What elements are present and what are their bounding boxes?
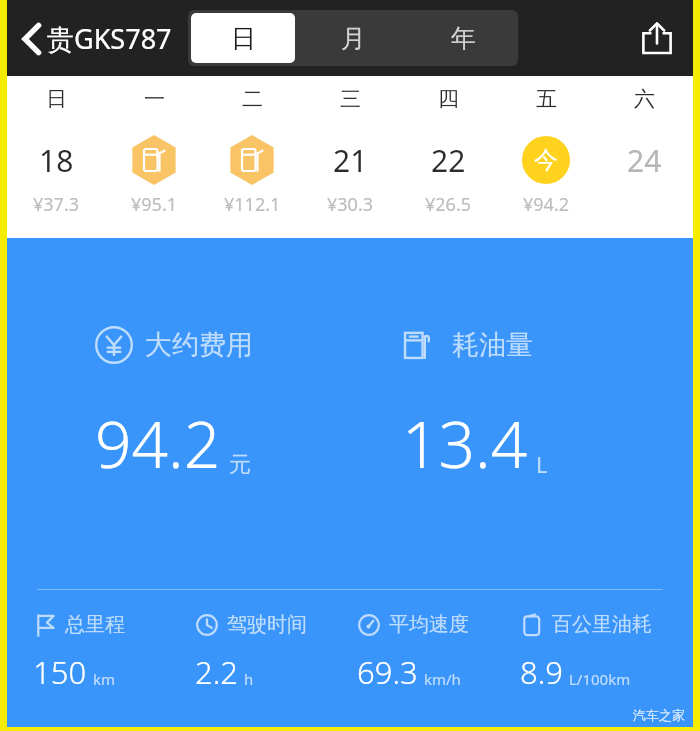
staticText: ¥30.3 bbox=[327, 192, 374, 217]
staticText: 二 bbox=[242, 86, 263, 112]
staticText: ¥37.3 bbox=[33, 192, 80, 217]
staticText: 8.9 bbox=[520, 651, 563, 693]
staticText: 日 bbox=[46, 86, 67, 112]
staticText: 年 bbox=[451, 23, 476, 54]
button[interactable]: 月 bbox=[301, 13, 405, 63]
staticText: 94.2 bbox=[95, 400, 221, 487]
button[interactable]: 总里程 bbox=[33, 612, 195, 693]
button[interactable]: 三 bbox=[301, 76, 399, 238]
button[interactable]: 百公里油耗 bbox=[520, 612, 683, 693]
button[interactable]: 日 bbox=[7, 76, 105, 238]
button[interactable]: 驾驶时间 bbox=[195, 612, 357, 693]
staticText: ¥94.2 bbox=[523, 192, 570, 217]
staticText: 五 bbox=[536, 86, 557, 112]
button[interactable]: Back bbox=[17, 14, 176, 63]
staticText: ¥26.5 bbox=[425, 192, 472, 217]
staticText: 月 bbox=[341, 23, 366, 54]
other: Back bbox=[21, 22, 43, 56]
staticText: 四 bbox=[438, 86, 459, 112]
staticText: 贵GKS787 bbox=[47, 20, 172, 57]
staticText: 13.4 bbox=[402, 400, 528, 487]
staticText: 一 bbox=[144, 86, 165, 112]
staticText: 元 bbox=[229, 451, 251, 479]
staticText: km bbox=[93, 669, 116, 689]
button[interactable]: 平均速度 bbox=[357, 612, 520, 693]
staticText: 21 bbox=[333, 140, 368, 181]
button[interactable]: 一 bbox=[105, 76, 203, 238]
staticText: 驾驶时间 bbox=[227, 612, 307, 637]
staticText: L/100km bbox=[569, 669, 631, 689]
button[interactable]: 二 bbox=[203, 76, 301, 238]
staticText: 大约费用 bbox=[145, 328, 253, 362]
staticText: ¥95.1 bbox=[131, 192, 178, 217]
button[interactable]: 四 bbox=[399, 76, 497, 238]
staticText: 18 bbox=[39, 140, 74, 181]
button[interactable]: 年 bbox=[411, 13, 515, 63]
staticText: 69.3 bbox=[357, 651, 418, 693]
staticText: 今 bbox=[534, 145, 558, 175]
staticText: 百公里油耗 bbox=[552, 612, 652, 637]
staticText: 24 bbox=[627, 140, 662, 181]
staticText: 总里程 bbox=[65, 612, 125, 637]
staticText: L bbox=[536, 449, 548, 479]
staticText: 日 bbox=[231, 23, 256, 54]
staticText: ¥112.1 bbox=[224, 192, 281, 217]
button[interactable]: Share bbox=[631, 12, 683, 64]
staticText: 六 bbox=[634, 86, 655, 112]
staticText: h bbox=[244, 669, 254, 689]
staticText: 汽车之家 bbox=[633, 707, 685, 723]
staticText: 耗油量 bbox=[452, 328, 533, 362]
staticText: 2.2 bbox=[195, 651, 238, 693]
staticText: km/h bbox=[424, 669, 461, 689]
staticText: 三 bbox=[340, 86, 361, 112]
staticText: 22 bbox=[431, 140, 466, 181]
button[interactable]: 日 bbox=[191, 13, 295, 63]
staticText: 平均速度 bbox=[389, 612, 469, 637]
button[interactable]: 五 bbox=[497, 76, 595, 238]
staticText: 150 bbox=[33, 651, 87, 693]
button[interactable]: 六 bbox=[595, 76, 693, 238]
